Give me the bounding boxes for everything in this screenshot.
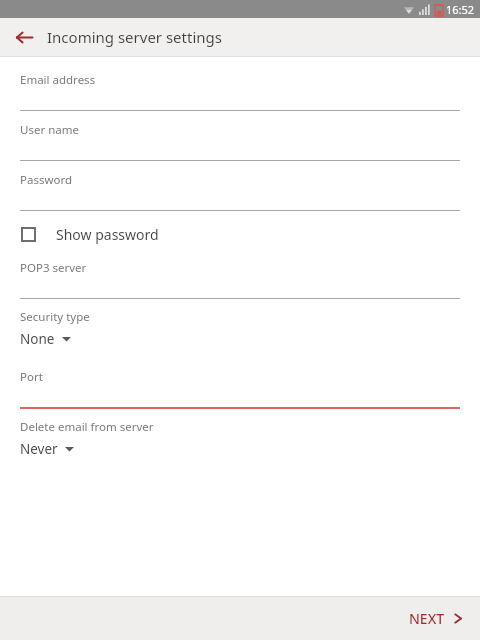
button[interactable]: Back [8, 21, 40, 53]
staticText: Port [20, 369, 43, 385]
button[interactable]: Delete email from server [0, 413, 480, 472]
button[interactable]: Port [0, 362, 480, 413]
staticText: 16:52 [446, 2, 475, 17]
staticText: Delete email from server [20, 419, 154, 435]
button[interactable]: POP3 server [0, 253, 480, 303]
staticText: Never [20, 440, 58, 458]
button[interactable]: Email address [0, 65, 480, 115]
button[interactable]: Security type [0, 303, 480, 362]
staticText: POP3 server [20, 260, 87, 276]
staticText: Security type [20, 309, 90, 325]
button[interactable]: User name [0, 115, 480, 165]
staticText: Incoming server settings [47, 27, 222, 47]
button[interactable]: NEXT [391, 600, 480, 637]
staticText: None [20, 330, 55, 348]
button[interactable]: Show password [0, 215, 480, 253]
button[interactable]: Password [0, 165, 480, 215]
staticText: Show password [56, 225, 159, 244]
staticText: NEXT [409, 609, 445, 628]
staticText: Email address [20, 72, 96, 88]
staticText: Password [20, 172, 73, 188]
staticText: User name [20, 122, 79, 138]
